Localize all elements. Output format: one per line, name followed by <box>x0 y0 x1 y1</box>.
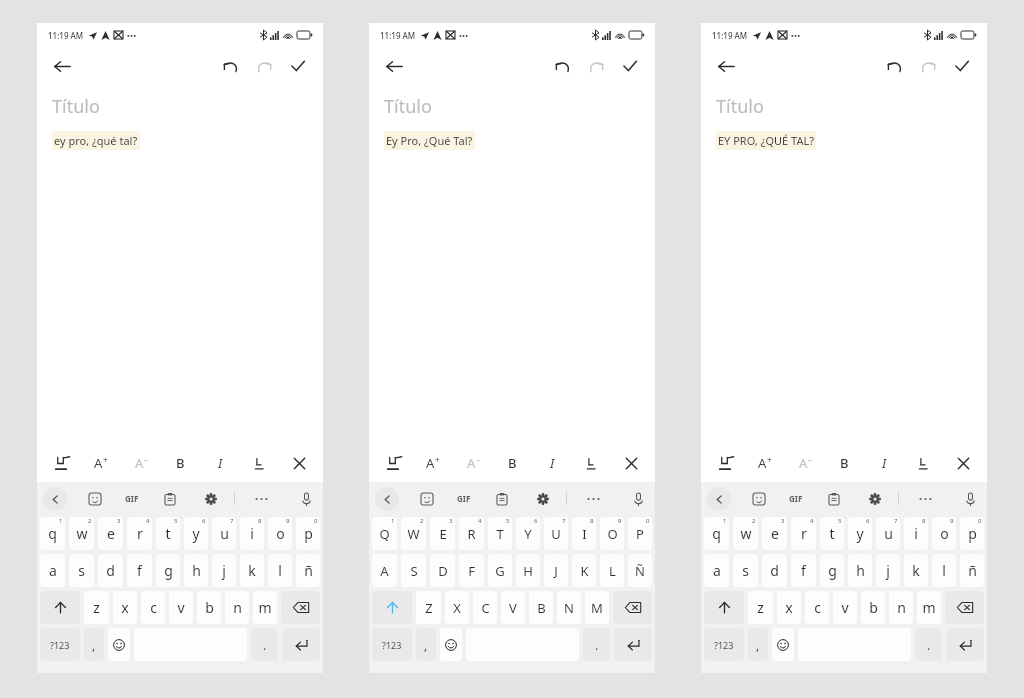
button[interactable]: Decrease size <box>790 448 820 478</box>
button[interactable]: Underline <box>908 448 938 478</box>
button[interactable]: ?123 <box>372 628 412 661</box>
button[interactable]: P <box>628 517 652 550</box>
button[interactable]: Back <box>377 49 411 83</box>
button[interactable]: Collapse <box>43 487 67 511</box>
button[interactable]: . <box>251 628 278 661</box>
button[interactable]: Enter <box>614 628 652 661</box>
button[interactable]: Emoji <box>440 628 462 661</box>
button[interactable]: Settings <box>864 488 886 510</box>
button[interactable]: Highlight <box>47 448 77 478</box>
button[interactable]: f <box>127 554 152 587</box>
button[interactable]: q <box>704 517 729 550</box>
button[interactable]: d <box>762 554 787 587</box>
button[interactable]: y <box>184 517 208 550</box>
button[interactable]: Backspace <box>281 591 320 624</box>
button[interactable]: t <box>820 517 844 550</box>
button[interactable]: Backspace <box>945 591 984 624</box>
button[interactable]: y <box>848 517 872 550</box>
button[interactable]: Emoji <box>108 628 130 661</box>
button[interactable]: Enter <box>946 628 984 661</box>
button[interactable]: Q <box>372 517 397 550</box>
button[interactable]: H <box>516 554 540 587</box>
button[interactable]: o <box>932 517 956 550</box>
button[interactable]: e <box>98 517 123 550</box>
button[interactable]: m <box>917 591 941 624</box>
button[interactable]: I <box>205 448 235 478</box>
button[interactable]: S <box>401 554 426 587</box>
button[interactable]: X <box>445 591 469 624</box>
button[interactable]: ñ <box>296 554 320 587</box>
button[interactable]: More <box>914 488 936 510</box>
button[interactable]: Back <box>709 49 743 83</box>
button[interactable]: . <box>915 628 942 661</box>
button[interactable]: Redo <box>579 49 613 83</box>
button[interactable]: r <box>127 517 152 550</box>
button[interactable]: Increase size <box>750 448 780 478</box>
button[interactable]: h <box>848 554 872 587</box>
button[interactable]: Clear formatting <box>616 448 646 478</box>
button[interactable]: u <box>212 517 236 550</box>
button[interactable]: Clipboard <box>159 488 181 510</box>
button[interactable]: Increase size <box>86 448 116 478</box>
button[interactable]: B <box>529 591 553 624</box>
button[interactable]: GIF <box>457 493 471 504</box>
button[interactable]: l <box>268 554 292 587</box>
button[interactable]: Shift <box>372 591 412 624</box>
button[interactable]: N <box>557 591 581 624</box>
button[interactable]: Decrease size <box>126 448 156 478</box>
button[interactable]: T <box>488 517 512 550</box>
button[interactable]: z <box>748 591 773 624</box>
button[interactable]: GIF <box>789 493 803 504</box>
button[interactable]: s <box>733 554 758 587</box>
button[interactable]: Collapse <box>375 487 399 511</box>
button[interactable]: Save <box>281 49 315 83</box>
button[interactable]: Clipboard <box>491 488 513 510</box>
button[interactable]: Undo <box>213 49 247 83</box>
button[interactable]: More <box>582 488 604 510</box>
button[interactable]: Save <box>613 49 647 83</box>
button[interactable]: I <box>869 448 899 478</box>
button[interactable]: O <box>600 517 624 550</box>
button[interactable]: Highlight <box>379 448 409 478</box>
button[interactable]: Clipboard <box>823 488 845 510</box>
button[interactable]: B <box>165 448 195 478</box>
button[interactable]: Highlight <box>711 448 741 478</box>
button[interactable]: h <box>184 554 208 587</box>
button[interactable]: Shift <box>40 591 80 624</box>
button[interactable]: More <box>250 488 272 510</box>
button[interactable]: J <box>544 554 568 587</box>
button[interactable]: n <box>889 591 913 624</box>
button[interactable]: Emoji <box>772 628 794 661</box>
button[interactable]: B <box>497 448 527 478</box>
button[interactable]: u <box>876 517 900 550</box>
button[interactable]: k <box>240 554 264 587</box>
button[interactable]: q <box>40 517 65 550</box>
button[interactable]: Redo <box>247 49 281 83</box>
button[interactable]: g <box>820 554 844 587</box>
button[interactable]: Stickers <box>84 488 106 510</box>
button[interactable]: ?123 <box>704 628 744 661</box>
button[interactable]: b <box>197 591 221 624</box>
button[interactable]: Settings <box>532 488 554 510</box>
button[interactable]: v <box>833 591 857 624</box>
button[interactable]: U <box>544 517 568 550</box>
button[interactable]: E <box>430 517 455 550</box>
button[interactable]: Ñ <box>628 554 652 587</box>
button[interactable]: j <box>212 554 236 587</box>
button[interactable]: Clear formatting <box>284 448 314 478</box>
button[interactable]: w <box>733 517 758 550</box>
button[interactable]: D <box>430 554 455 587</box>
button[interactable]: d <box>98 554 123 587</box>
button[interactable]: K <box>572 554 596 587</box>
button[interactable]: W <box>401 517 426 550</box>
button[interactable]: Shift <box>704 591 744 624</box>
button[interactable]: Undo <box>545 49 579 83</box>
button[interactable]: Increase size <box>418 448 448 478</box>
button[interactable]: Underline <box>576 448 606 478</box>
button[interactable]: x <box>113 591 137 624</box>
button[interactable]: Voice input <box>627 488 649 510</box>
button[interactable]: b <box>861 591 885 624</box>
button[interactable]: r <box>791 517 816 550</box>
